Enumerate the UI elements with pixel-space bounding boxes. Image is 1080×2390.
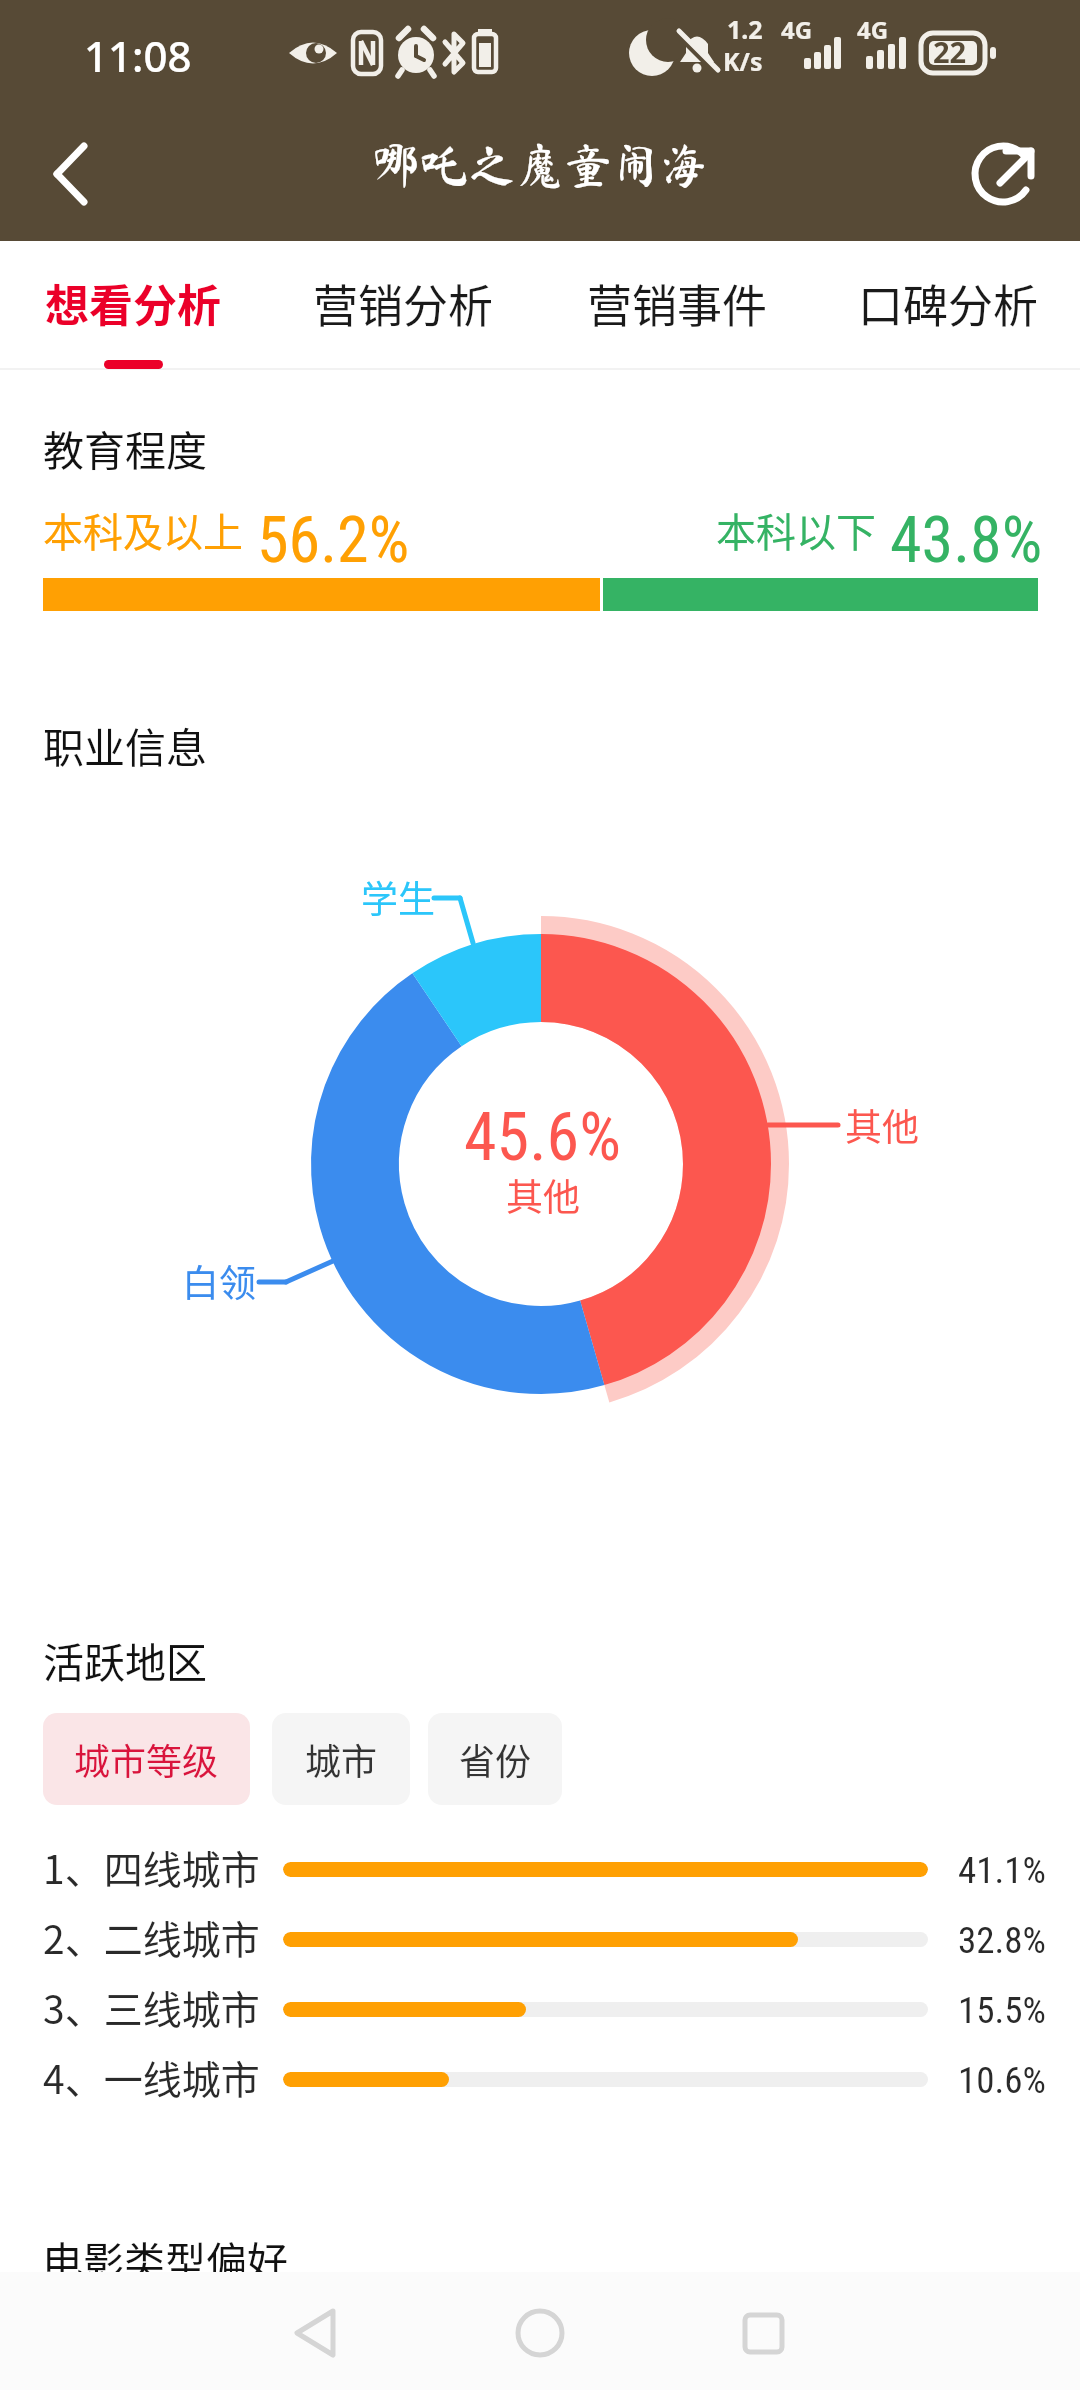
staticText: 口碑分析 xyxy=(838,271,1058,336)
staticText: 本科以下 xyxy=(716,501,885,559)
staticText: 32.8% xyxy=(958,1919,1046,1962)
staticText: 省份 xyxy=(459,1733,532,1785)
staticText: 15.5% xyxy=(958,1989,1046,2032)
staticText: 45.6% xyxy=(464,1099,621,1176)
staticText: 3、三线城市 xyxy=(43,1979,260,2035)
staticText: 56.2% xyxy=(257,503,410,578)
staticText: 4G xyxy=(857,13,889,46)
staticText: 想看分析 xyxy=(23,271,243,335)
button[interactable]: 口碑分析 xyxy=(838,241,1058,371)
staticText: 哪吒之魔童闹海 xyxy=(0,141,1080,189)
staticText: K/s xyxy=(723,44,763,78)
staticText: 学生 xyxy=(361,870,435,924)
staticText: 11:08 xyxy=(84,27,192,84)
staticText: 城市等级 xyxy=(74,1733,219,1785)
staticText: 4G xyxy=(781,13,813,46)
button[interactable]: Back xyxy=(20,114,130,224)
button[interactable]: 营销分析 xyxy=(293,241,513,371)
button[interactable]: 营销事件 xyxy=(567,241,787,371)
staticText: 营销分析 xyxy=(293,271,513,336)
staticText: 43.8% xyxy=(890,503,1043,578)
staticText: 10.6% xyxy=(958,2059,1046,2102)
staticText: 营销事件 xyxy=(567,271,787,336)
button[interactable]: 省份 xyxy=(428,1713,562,1805)
staticText: 本科及以上 xyxy=(43,501,252,559)
staticText: 教育程度 xyxy=(43,418,207,477)
staticText: 1.2 xyxy=(727,12,763,46)
staticText: 其他 xyxy=(845,1098,919,1152)
button[interactable]: 城市 xyxy=(272,1713,410,1805)
staticText: 1、四线城市 xyxy=(43,1839,260,1895)
button[interactable]: 城市等级 xyxy=(43,1713,250,1805)
staticText: 2、二线城市 xyxy=(43,1909,260,1965)
staticText: 其他 xyxy=(506,1168,580,1222)
staticText: 41.1% xyxy=(958,1849,1046,1892)
staticText: 4、一线城市 xyxy=(43,2049,260,2105)
button[interactable]: Share xyxy=(948,119,1058,229)
staticText: 白领 xyxy=(182,1254,256,1308)
button[interactable]: 想看分析 xyxy=(23,241,243,371)
staticText: 城市 xyxy=(305,1733,378,1785)
staticText: 职业信息 xyxy=(43,715,207,774)
staticText: 活跃地区 xyxy=(43,1630,207,1689)
staticText: 22 xyxy=(933,32,967,71)
staticText: 电影类型偏好 xyxy=(42,2229,288,2288)
